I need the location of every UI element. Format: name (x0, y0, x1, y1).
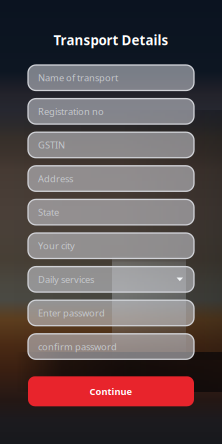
button[interactable]: confirm password (28, 334, 194, 359)
button[interactable]: Address (28, 166, 194, 191)
staticText: confirm password (38, 340, 117, 353)
staticText: Registration no (38, 105, 104, 118)
button[interactable]: Daily services (28, 267, 194, 292)
staticText: Enter password (38, 307, 105, 319)
button[interactable]: Continue (28, 376, 194, 406)
staticText: Your city (38, 240, 75, 252)
button[interactable]: Your city (28, 233, 194, 258)
button[interactable]: Enter password (28, 300, 194, 326)
button[interactable]: Registration no (28, 99, 194, 124)
staticText: Daily services (38, 273, 94, 286)
staticText: GSTIN (38, 139, 65, 151)
staticText: Name of transport (38, 72, 118, 84)
staticText: Continue (89, 385, 132, 397)
staticText: Address (38, 172, 73, 185)
button[interactable]: Name of transport (28, 65, 194, 90)
staticText: Transport Details (53, 31, 168, 49)
button[interactable]: State (28, 199, 194, 225)
button[interactable]: GSTIN (28, 132, 194, 158)
staticText: State (38, 206, 59, 218)
